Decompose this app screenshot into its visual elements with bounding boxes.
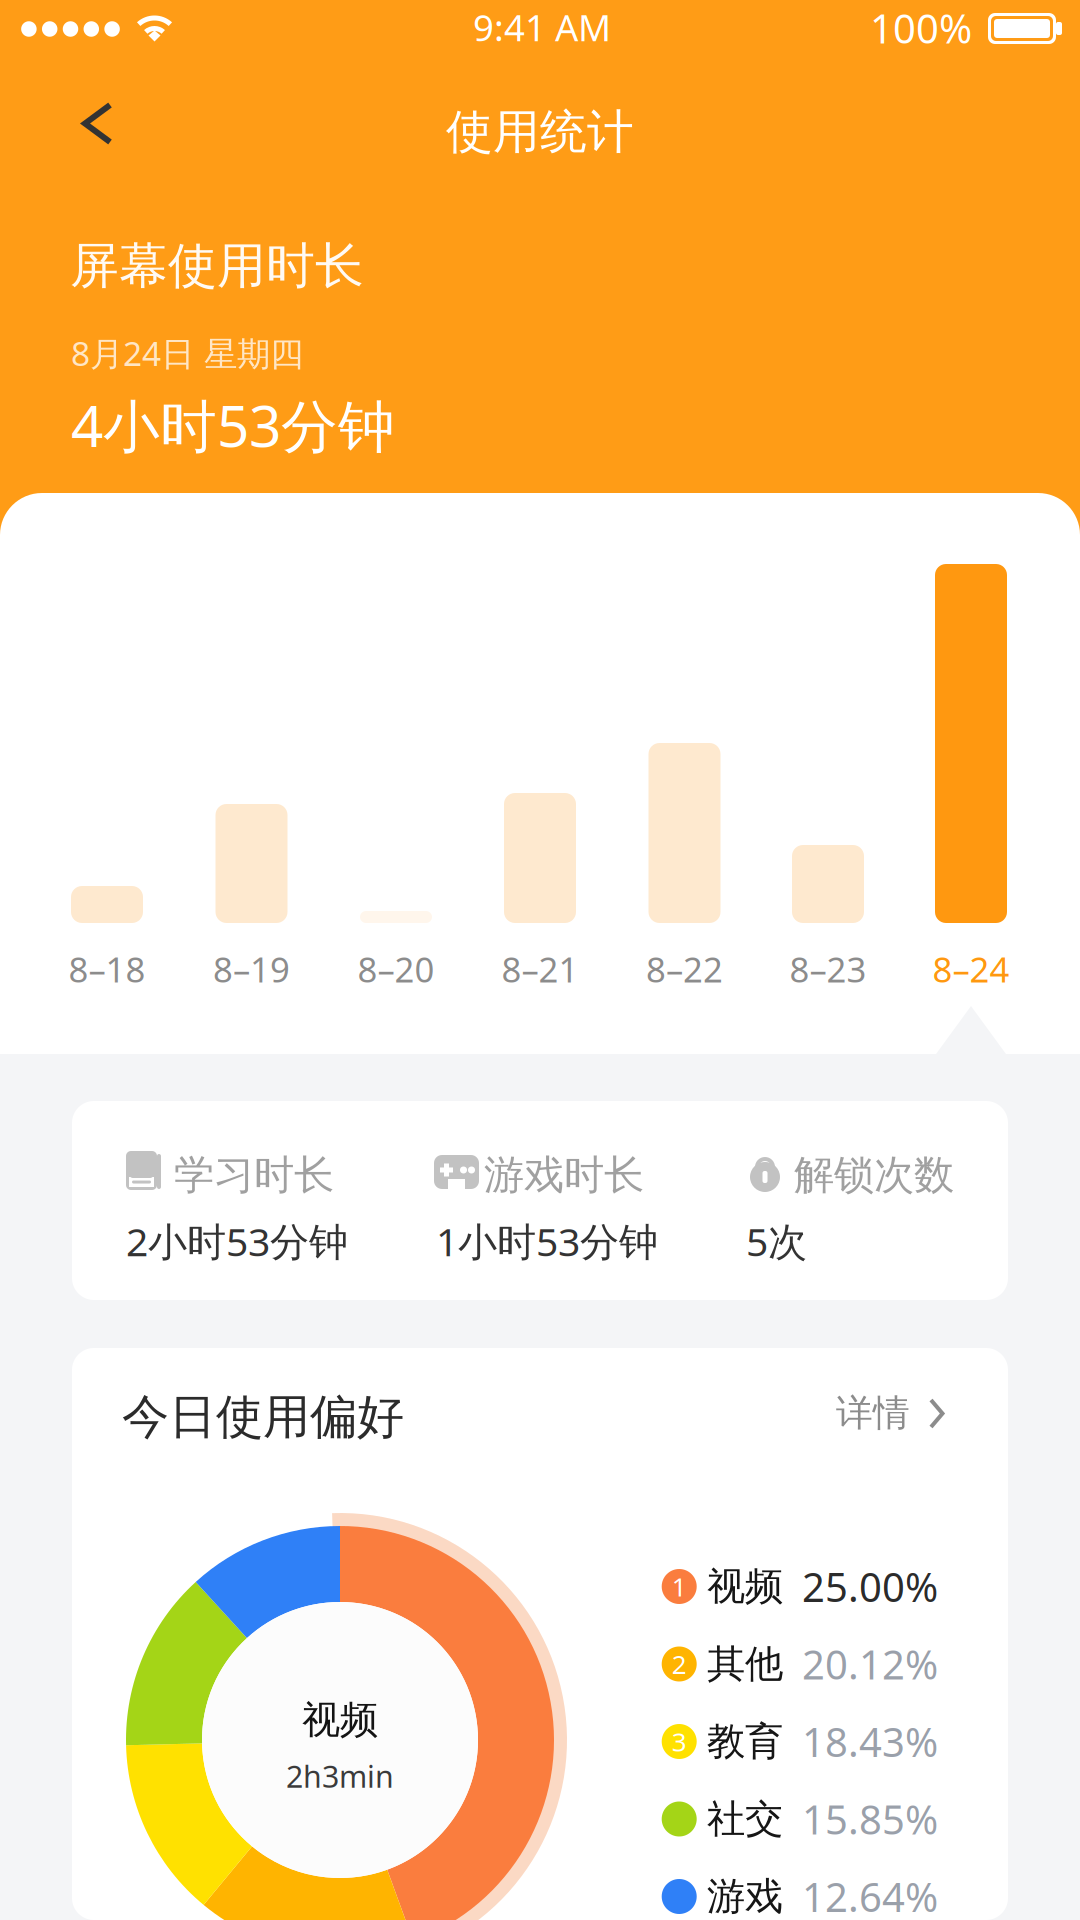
staticText: 游戏 xyxy=(707,1872,783,1920)
staticText: 8–23 xyxy=(789,945,866,993)
staticText: 2 xyxy=(672,1646,687,1682)
staticText: 视频 xyxy=(707,1562,783,1611)
staticText: 教育 xyxy=(707,1717,783,1766)
staticText: 学习时长 xyxy=(174,1150,334,1200)
staticText: 18.43% xyxy=(802,1714,938,1769)
staticText: 100% xyxy=(870,1,972,55)
staticText: 15.85% xyxy=(802,1792,938,1846)
staticText: 游戏时长 xyxy=(484,1150,644,1200)
staticText: 9:41 AM xyxy=(473,2,611,52)
staticText: 其他 xyxy=(707,1640,783,1688)
staticText: 2小时53分钟 xyxy=(126,1214,348,1268)
staticText: 使用统计 xyxy=(446,103,634,161)
staticText: 8–18 xyxy=(68,945,145,993)
staticText: 今日使用偏好 xyxy=(122,1387,404,1447)
staticText: 4小时53分钟 xyxy=(71,386,395,464)
staticText: 8–24 xyxy=(932,945,1009,993)
staticText: 详情 xyxy=(836,1390,910,1436)
staticText: 解锁次数 xyxy=(794,1150,954,1200)
staticText: 3 xyxy=(672,1724,687,1759)
button[interactable]: 返回 xyxy=(36,70,146,174)
button[interactable]: 详情 xyxy=(836,1381,1026,1445)
staticText: 屏幕使用时长 xyxy=(70,235,364,297)
staticText: 1小时53分钟 xyxy=(436,1214,658,1268)
staticText: 20.12% xyxy=(802,1637,938,1691)
staticText: 2h3min xyxy=(286,1755,394,1797)
staticText: 视频 xyxy=(302,1696,378,1744)
staticText: 8–20 xyxy=(357,945,434,993)
staticText: 8–19 xyxy=(213,945,290,993)
staticText: 8–21 xyxy=(501,945,578,993)
staticText: 社交 xyxy=(707,1795,783,1843)
staticText: 12.64% xyxy=(802,1869,938,1920)
staticText: 5次 xyxy=(746,1214,807,1268)
staticText: 1 xyxy=(672,1569,687,1604)
staticText: 8月24日 星期四 xyxy=(71,330,303,376)
staticText: 25.00% xyxy=(802,1559,938,1614)
staticText: 8–22 xyxy=(646,945,723,993)
